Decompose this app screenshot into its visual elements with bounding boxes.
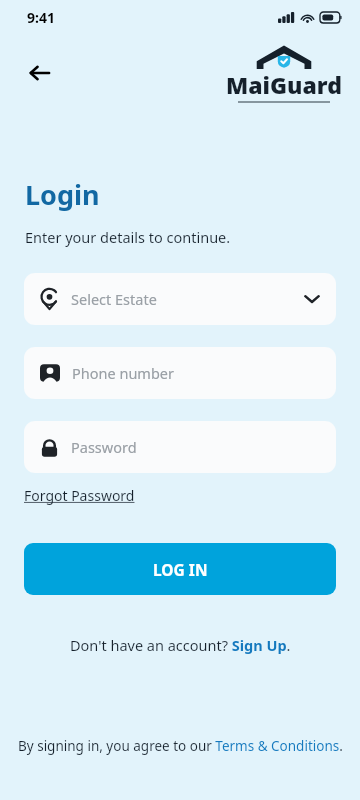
staticText: Phone number xyxy=(72,363,174,383)
button[interactable]: Back xyxy=(22,55,58,91)
button[interactable]: LOG IN xyxy=(24,543,336,595)
staticText: LOG IN xyxy=(153,559,208,580)
button[interactable]: Phone number xyxy=(24,347,336,399)
button[interactable]: Select Estate xyxy=(24,273,336,325)
staticText: Login xyxy=(25,176,100,213)
staticText: 9:41 xyxy=(27,8,55,27)
button[interactable]: Don't have an account? Sign Up. xyxy=(70,635,291,655)
staticText: Select Estate xyxy=(71,289,157,309)
staticText: Forgot Password xyxy=(24,486,135,505)
staticText: MaiGuard xyxy=(226,69,342,100)
staticText: Password xyxy=(71,437,137,457)
staticText: Don't have an account? Sign Up. xyxy=(70,635,291,655)
button[interactable]: By signing in, you agree to our Terms & … xyxy=(18,737,343,755)
staticText: Enter your details to continue. xyxy=(25,227,231,247)
button[interactable]: Password xyxy=(24,421,336,473)
button[interactable]: Forgot Password xyxy=(24,486,135,505)
staticText: By signing in, you agree to our Terms & … xyxy=(18,737,343,755)
